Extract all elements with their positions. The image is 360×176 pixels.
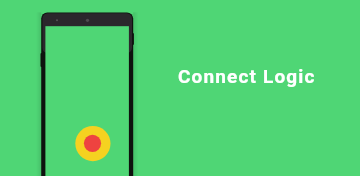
button[interactable]: Record — [75, 126, 110, 161]
staticText: Connect Logic — [178, 65, 316, 87]
